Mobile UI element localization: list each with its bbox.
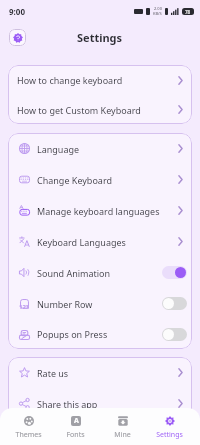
staticText: Fonts — [66, 430, 85, 440]
button[interactable]: Themes — [5, 408, 52, 445]
staticText: Manage keyboard languages — [37, 205, 160, 217]
staticText: Themes — [15, 430, 42, 440]
button[interactable]: A — [52, 408, 99, 445]
staticText: Settings — [77, 30, 123, 45]
staticText: Language — [37, 143, 80, 155]
button[interactable]: Change Keyboard — [8, 164, 192, 195]
button[interactable]: How to change keyboard — [8, 65, 192, 95]
staticText: How to get Custom Keyboard — [17, 104, 141, 116]
button[interactable]: Share this app — [8, 388, 192, 419]
staticText: Share this app — [37, 398, 98, 410]
button[interactable]: Manage keyboard languages — [8, 195, 192, 226]
staticText: Settings — [156, 430, 183, 440]
staticText: How to change keyboard — [17, 74, 123, 86]
staticText: Keyboard Languages — [37, 236, 126, 248]
staticText: 123 — [19, 303, 30, 311]
button[interactable]: Help — [9, 29, 26, 46]
staticText: Rate us — [37, 367, 69, 379]
staticText: Sound Animation — [37, 267, 111, 279]
staticText: A — [74, 416, 79, 426]
staticText: 78 — [185, 9, 191, 15]
staticText: KB/S — [153, 11, 162, 16]
staticText: Number Row — [37, 298, 93, 310]
staticText: 9:00 — [9, 6, 25, 17]
button[interactable]: Settings — [146, 408, 193, 445]
staticText: Mine — [114, 430, 131, 440]
button[interactable]: Popups on Press — [8, 319, 192, 349]
button[interactable]: Keyboard Languages — [8, 226, 192, 257]
button[interactable]: Language — [8, 133, 192, 164]
staticText: Change Keyboard — [37, 174, 112, 186]
button[interactable]: Sound Animation — [8, 257, 192, 288]
button[interactable]: How to get Custom Keyboard — [8, 95, 192, 124]
staticText: Popups on Press — [37, 328, 108, 340]
button[interactable]: Rate us — [8, 357, 192, 388]
button[interactable]: Mine — [99, 408, 146, 445]
staticText: 2.00 — [154, 6, 162, 11]
button[interactable]: 123 — [8, 288, 192, 319]
